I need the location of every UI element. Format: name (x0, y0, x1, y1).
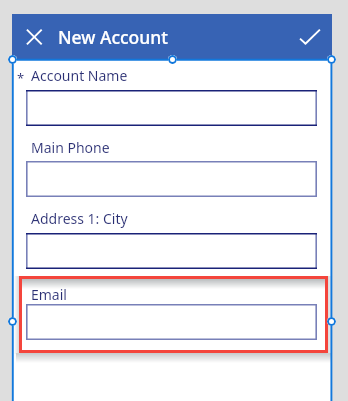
button[interactable] (26, 161, 317, 197)
staticText: Email (31, 285, 67, 304)
staticText: * (17, 69, 25, 87)
button[interactable]: Close (19, 20, 50, 51)
button[interactable] (26, 304, 317, 340)
button[interactable]: Save (297, 20, 328, 51)
staticText: Main Phone (31, 138, 110, 157)
staticText: New Account (58, 25, 168, 49)
staticText: Address 1: City (31, 209, 128, 228)
button[interactable] (26, 90, 317, 126)
button[interactable] (26, 233, 317, 269)
staticText: Account Name (31, 66, 128, 85)
